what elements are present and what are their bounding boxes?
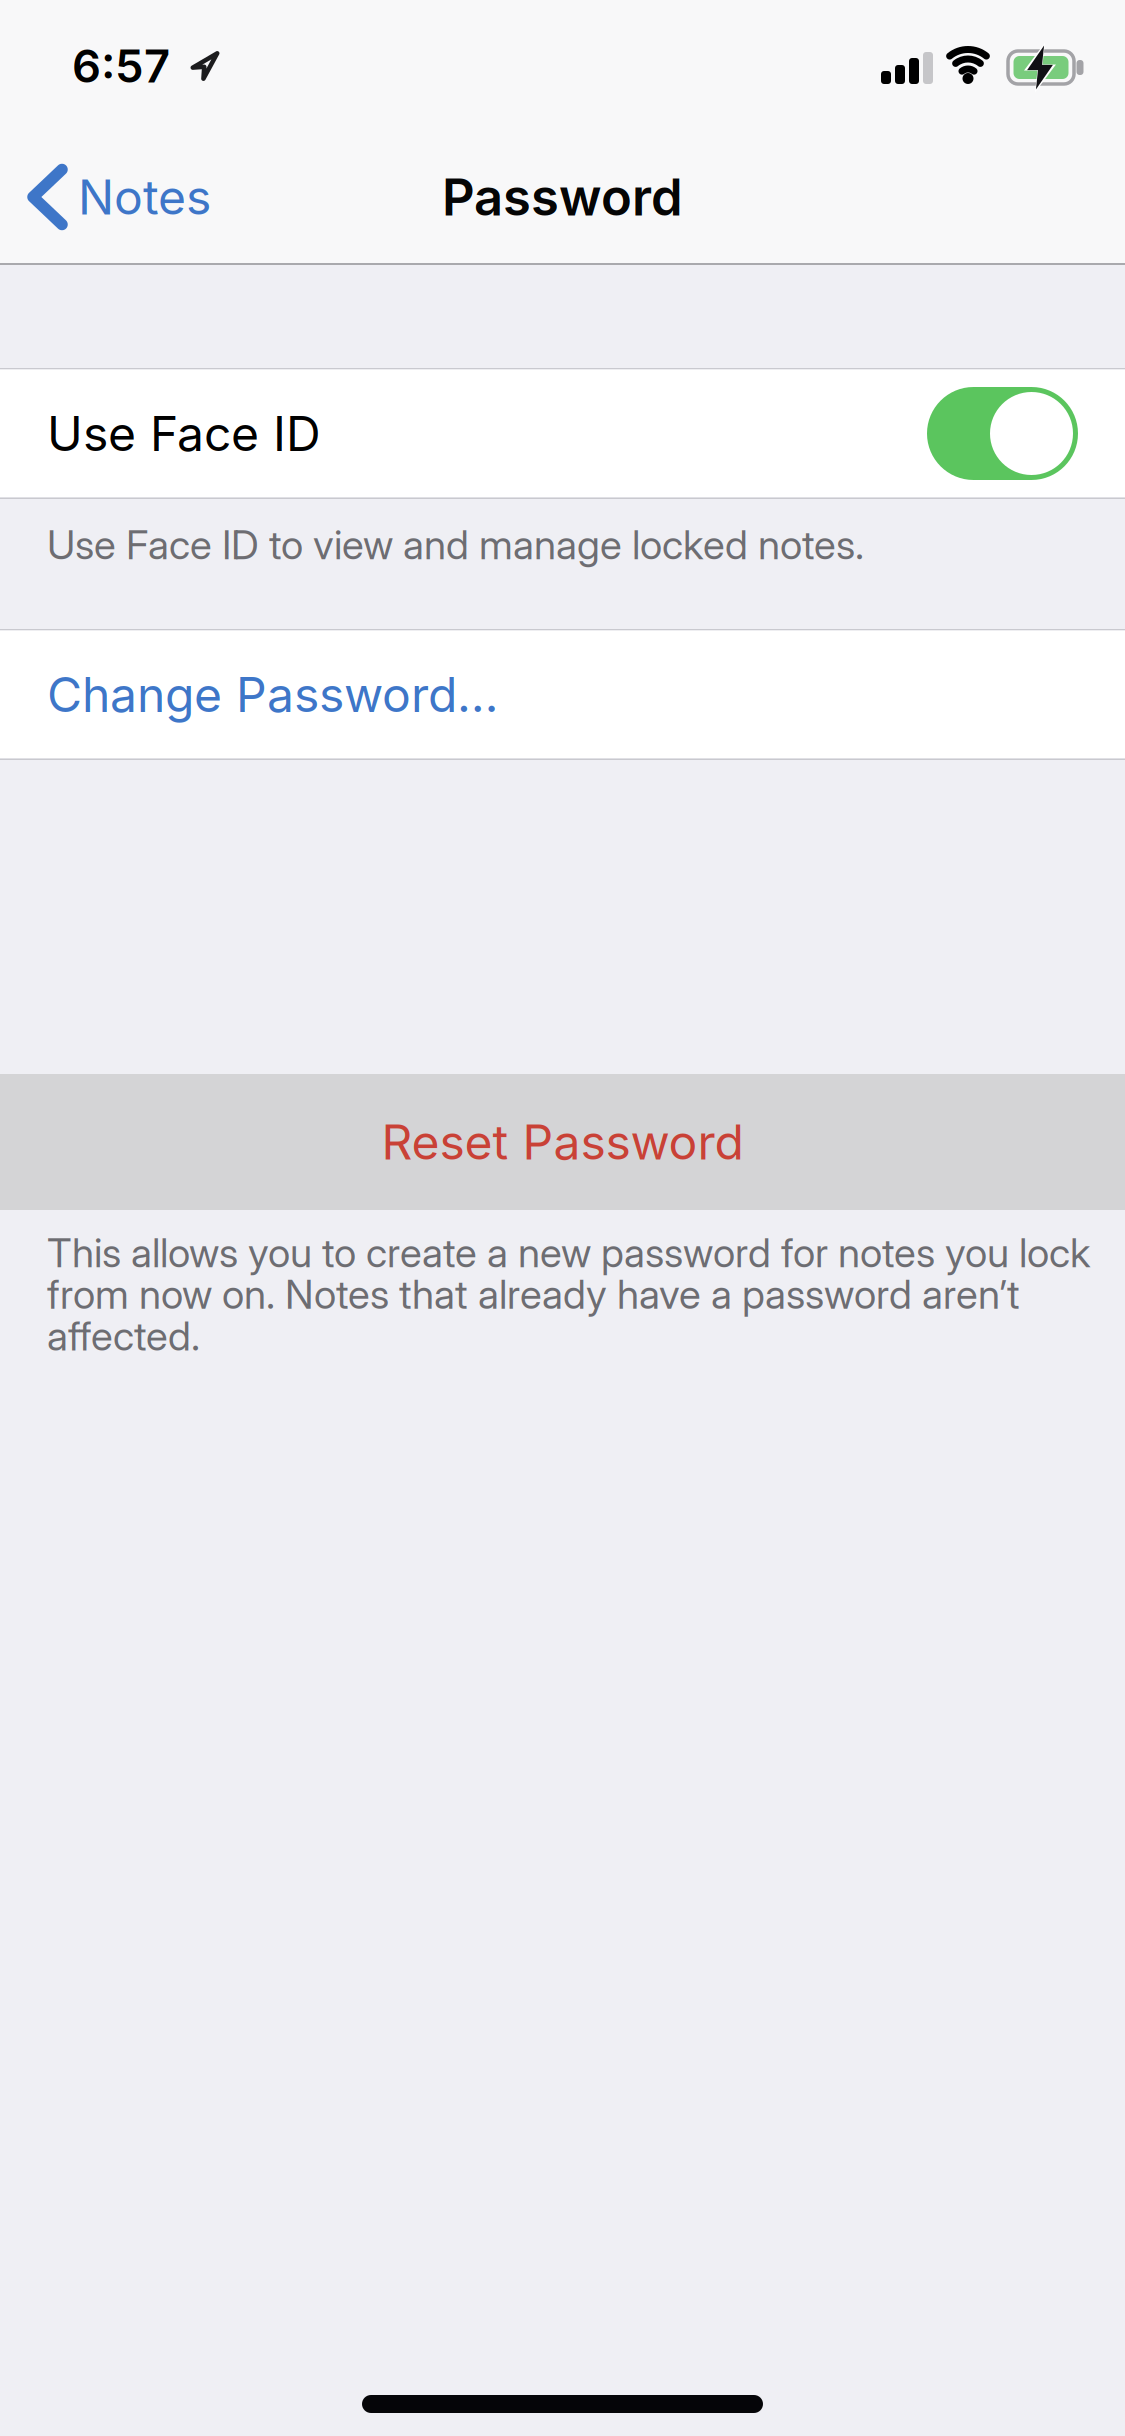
button[interactable]: Change Password… [0,630,1125,758]
staticText: Notes [78,169,211,225]
staticText: Password [442,167,683,227]
staticText: Reset Password [381,1114,743,1170]
staticText: 6:57 [72,39,170,93]
staticText: This allows you to create a new password… [47,1229,1090,1360]
button[interactable]: Notes [33,152,211,242]
staticText: Change Password… [47,666,498,723]
button[interactable]: Reset Password [0,1074,1125,1210]
staticText: Use Face ID [47,405,321,462]
button[interactable]: Use Face ID [927,387,1078,480]
staticText: Use Face ID to view and manage locked no… [47,521,864,568]
